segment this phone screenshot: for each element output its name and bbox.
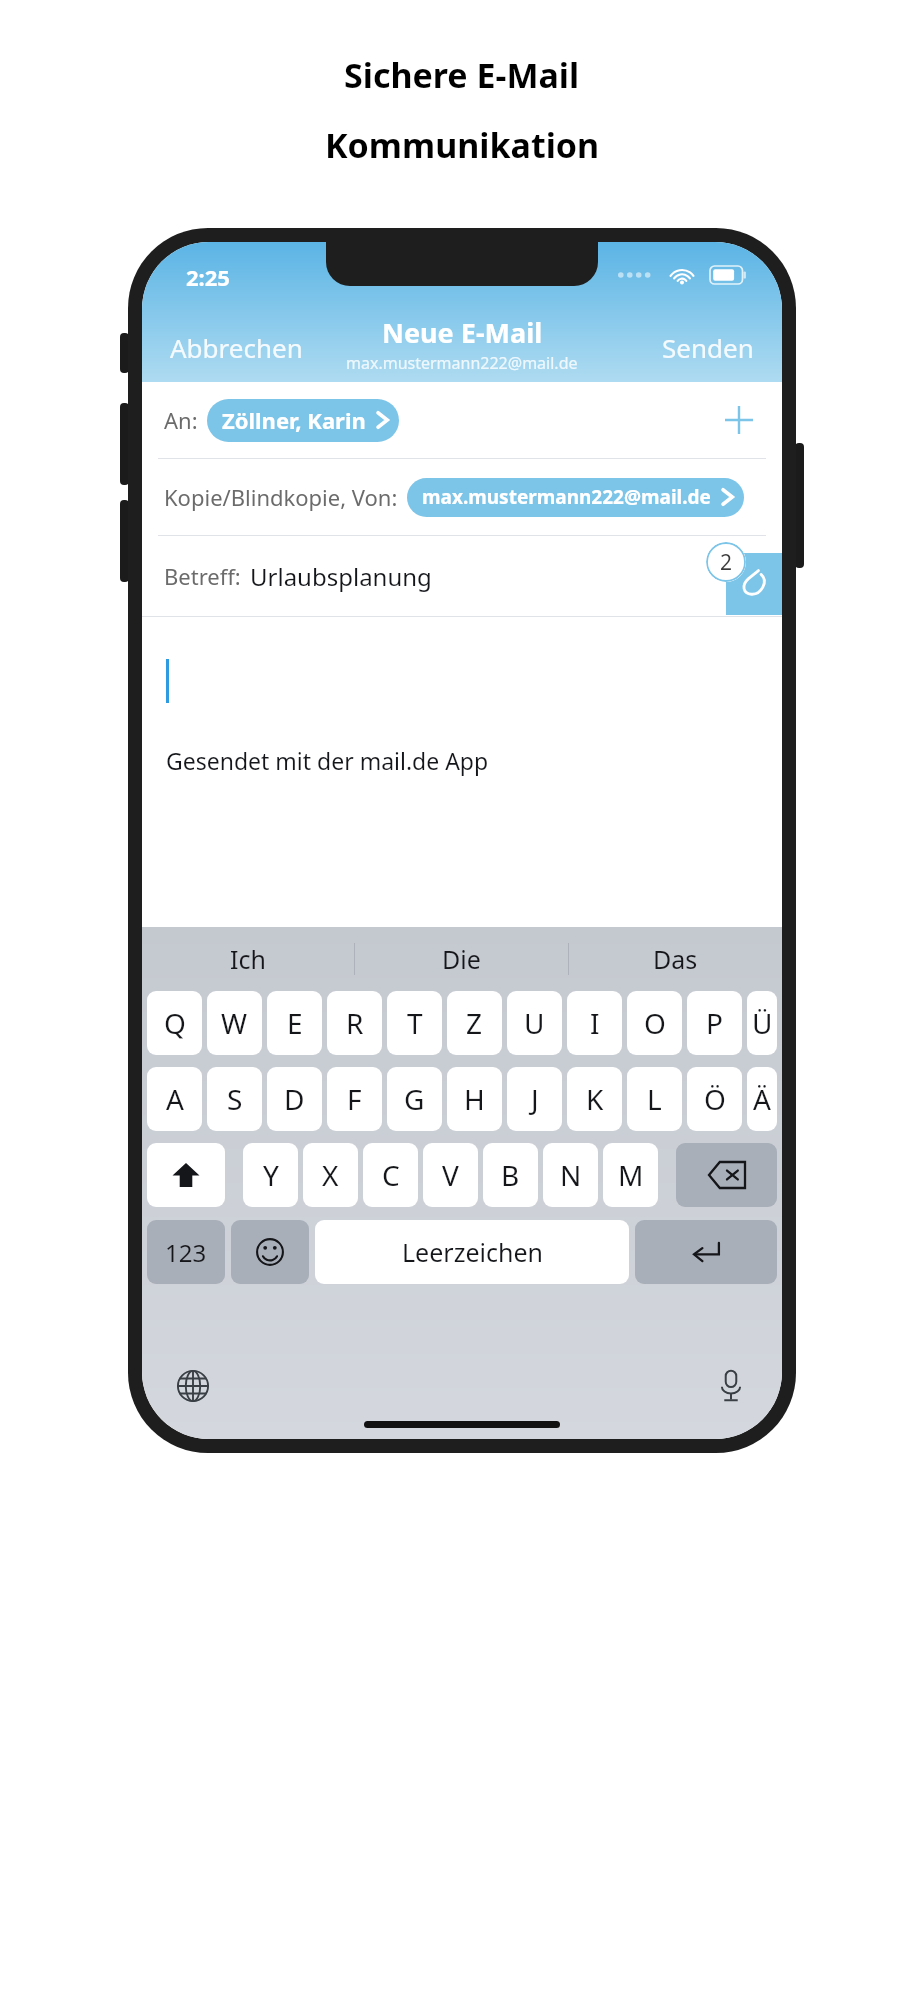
button[interactable]: J bbox=[507, 1067, 562, 1131]
staticText: Kommunikation bbox=[325, 122, 600, 168]
button[interactable]: Z bbox=[447, 991, 502, 1055]
staticText: X bbox=[322, 1156, 339, 1194]
staticText: Z bbox=[466, 1004, 483, 1042]
button[interactable]: M bbox=[603, 1143, 658, 1207]
staticText: O bbox=[644, 1004, 666, 1042]
button[interactable]: O bbox=[627, 991, 682, 1055]
staticText: Gesendet mit der mail.de App bbox=[166, 745, 489, 776]
staticText: Q bbox=[164, 1004, 186, 1042]
staticText: Ä bbox=[753, 1080, 771, 1118]
button[interactable]: Anhänge bbox=[726, 553, 782, 615]
staticText: Y bbox=[263, 1156, 279, 1194]
staticText: J bbox=[531, 1080, 539, 1118]
staticText: G bbox=[404, 1080, 425, 1118]
button[interactable]: Ö bbox=[687, 1067, 742, 1131]
staticText: U bbox=[524, 1004, 545, 1042]
staticText: 2 bbox=[720, 548, 733, 577]
button[interactable]: Abbrechen bbox=[162, 326, 311, 369]
button[interactable]: Löschen bbox=[676, 1143, 777, 1207]
staticText: Leerzeichen bbox=[402, 1235, 543, 1269]
staticText: Urlaubsplanung bbox=[250, 560, 432, 593]
staticText: 123 bbox=[165, 1236, 207, 1269]
staticText: Senden bbox=[662, 330, 754, 365]
staticText: Ich bbox=[230, 942, 266, 976]
staticText: T bbox=[407, 1004, 423, 1042]
button[interactable]: Diktieren bbox=[708, 1363, 754, 1409]
staticText: L bbox=[647, 1080, 662, 1118]
button[interactable]: T bbox=[387, 991, 442, 1055]
button[interactable]: P bbox=[687, 991, 742, 1055]
staticText: F bbox=[347, 1080, 362, 1118]
button[interactable]: Die bbox=[355, 927, 568, 991]
button[interactable]: K bbox=[567, 1067, 622, 1131]
button[interactable]: R bbox=[327, 991, 382, 1055]
button[interactable]: H bbox=[447, 1067, 502, 1131]
button[interactable]: Das bbox=[569, 927, 782, 991]
button[interactable]: Betreff: bbox=[142, 536, 782, 616]
button[interactable]: Zöllner, Karin bbox=[207, 399, 399, 442]
staticText: Sichere E-Mail bbox=[344, 52, 580, 98]
staticText: Betreff: bbox=[164, 561, 241, 591]
button[interactable]: B bbox=[483, 1143, 538, 1207]
button[interactable]: Gesendet mit der mail.de App bbox=[142, 617, 782, 927]
button[interactable]: V bbox=[423, 1143, 478, 1207]
button[interactable]: Ich bbox=[142, 927, 354, 991]
staticText: K bbox=[586, 1080, 604, 1118]
staticText: Abbrechen bbox=[170, 330, 303, 365]
staticText: R bbox=[346, 1004, 364, 1042]
staticText: C bbox=[382, 1156, 400, 1194]
staticText: I bbox=[590, 1004, 600, 1042]
button[interactable]: Umschalt bbox=[147, 1143, 225, 1207]
staticText: Kopie/Blindkopie, Von: bbox=[164, 482, 398, 512]
staticText: N bbox=[560, 1156, 582, 1194]
staticText: S bbox=[227, 1080, 243, 1118]
button[interactable]: N bbox=[543, 1143, 598, 1207]
button[interactable]: Emoji bbox=[231, 1220, 309, 1284]
button[interactable]: Empfänger hinzufügen bbox=[718, 399, 760, 441]
button[interactable]: L bbox=[627, 1067, 682, 1131]
staticText: A bbox=[166, 1080, 184, 1118]
button[interactable]: Ü bbox=[747, 991, 777, 1055]
staticText: B bbox=[501, 1156, 520, 1194]
staticText: max.mustermann222@mail.de bbox=[346, 352, 578, 374]
button[interactable]: D bbox=[267, 1067, 322, 1131]
button[interactable]: G bbox=[387, 1067, 442, 1131]
staticText: Ü bbox=[752, 1004, 773, 1042]
button[interactable]: Ä bbox=[747, 1067, 777, 1131]
staticText: An: bbox=[164, 405, 198, 435]
button[interactable]: Leerzeichen bbox=[315, 1220, 629, 1284]
staticText: Die bbox=[442, 942, 481, 976]
button[interactable]: Kopie/Blindkopie, Von: bbox=[142, 459, 782, 535]
staticText: max.mustermann222@mail.de bbox=[422, 484, 711, 510]
button[interactable]: Senden bbox=[654, 326, 762, 369]
staticText: H bbox=[464, 1080, 485, 1118]
button[interactable]: An: bbox=[142, 382, 782, 458]
button[interactable]: A bbox=[147, 1067, 202, 1131]
button[interactable]: max.mustermann222@mail.de bbox=[407, 478, 744, 517]
button[interactable]: S bbox=[207, 1067, 262, 1131]
staticText: Das bbox=[653, 942, 698, 976]
button[interactable]: X bbox=[303, 1143, 358, 1207]
staticText: V bbox=[442, 1156, 459, 1194]
button[interactable]: C bbox=[363, 1143, 418, 1207]
button[interactable]: Y bbox=[243, 1143, 298, 1207]
staticText: Zöllner, Karin bbox=[222, 405, 366, 435]
staticText: 2:25 bbox=[186, 262, 230, 292]
staticText: M bbox=[618, 1156, 644, 1194]
button[interactable]: W bbox=[207, 991, 262, 1055]
button[interactable]: 123 bbox=[147, 1220, 225, 1284]
staticText: W bbox=[221, 1004, 248, 1042]
button[interactable]: I bbox=[567, 991, 622, 1055]
button[interactable]: Q bbox=[147, 991, 202, 1055]
button[interactable]: Eingabe bbox=[635, 1220, 777, 1284]
staticText: P bbox=[706, 1004, 723, 1042]
button[interactable]: E bbox=[267, 991, 322, 1055]
staticText: E bbox=[287, 1004, 303, 1042]
button[interactable]: Sprache wechseln bbox=[170, 1363, 216, 1409]
staticText: D bbox=[284, 1080, 305, 1118]
button[interactable]: F bbox=[327, 1067, 382, 1131]
button[interactable]: U bbox=[507, 991, 562, 1055]
staticText: Neue E-Mail bbox=[382, 314, 543, 351]
staticText: Ö bbox=[704, 1080, 726, 1118]
